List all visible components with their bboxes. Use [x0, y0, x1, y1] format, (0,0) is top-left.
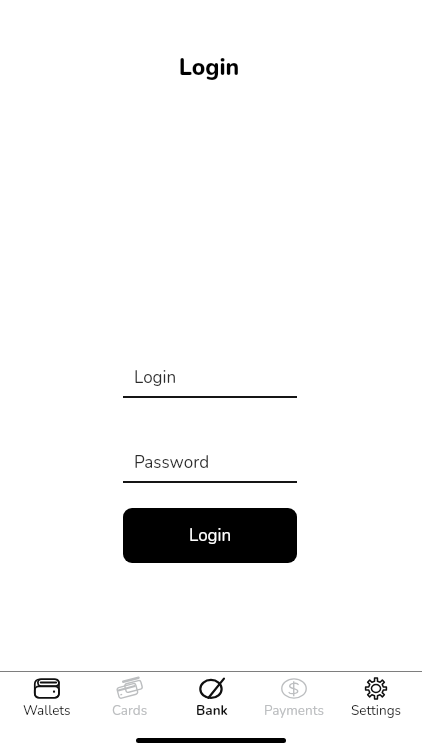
staticText: Login	[0, 52, 420, 83]
staticText: Password	[134, 451, 210, 474]
staticText: Wallets	[23, 701, 71, 719]
button[interactable]: Login	[123, 508, 297, 563]
button[interactable]: Wallets	[5, 672, 88, 719]
button[interactable]: Login	[123, 366, 297, 398]
button[interactable]: Settings	[335, 672, 417, 719]
staticText: Cards	[112, 701, 148, 719]
staticText: Settings	[351, 701, 402, 719]
button[interactable]: Payments	[253, 672, 335, 719]
staticText: Payments	[264, 701, 324, 719]
staticText: Login	[189, 524, 232, 547]
button[interactable]: Cards	[88, 672, 171, 719]
staticText: Login	[134, 366, 177, 389]
staticText: Bank	[196, 701, 228, 719]
button[interactable]: Password	[123, 451, 297, 483]
button[interactable]: Bank	[171, 672, 253, 719]
